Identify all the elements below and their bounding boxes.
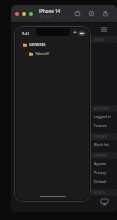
button[interactable]: Minimize [22, 12, 26, 16]
staticText: Appear [94, 161, 107, 166]
button[interactable]: Share [101, 9, 110, 18]
button[interactable]: Takeoff [16, 50, 89, 57]
staticText: PREFERS [94, 154, 107, 158]
button[interactable]: Default [91, 177, 117, 186]
button[interactable]: Console [91, 196, 117, 208]
button[interactable]: GENESIS [16, 41, 89, 48]
staticText: GENESIS [29, 42, 46, 47]
button[interactable]: Logged in [91, 112, 117, 121]
staticText: Takeoff [35, 51, 49, 56]
button[interactable]: Block list [91, 140, 117, 149]
staticText: Logged in [94, 114, 111, 119]
staticText: BUILDS [94, 191, 106, 195]
button[interactable]: Feature [91, 121, 117, 130]
staticText: PRIVACY [94, 135, 107, 139]
staticText: Default [94, 179, 107, 184]
staticText: 9:41 [22, 31, 30, 36]
staticText: Block list [94, 142, 109, 147]
staticText: ACCOUNT [94, 107, 110, 111]
staticText: iOS 16.2 [39, 14, 52, 19]
staticText: Privacy [94, 170, 106, 175]
button[interactable]: Home [73, 9, 82, 18]
button[interactable]: Appear [91, 159, 117, 168]
staticText: Feature [94, 123, 107, 128]
button[interactable]: Close [15, 12, 19, 16]
button[interactable]: Privacy [91, 168, 117, 177]
button[interactable]: Zoom [29, 12, 33, 16]
staticText: DEVICE [94, 38, 105, 42]
button[interactable]: Settings [87, 9, 96, 18]
button[interactable]: Menu [91, 23, 117, 36]
staticText: iPhone 14 [39, 8, 60, 14]
